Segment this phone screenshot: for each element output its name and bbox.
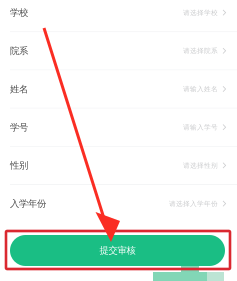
button[interactable]: 姓名 (0, 70, 237, 109)
staticText: 学号 (10, 122, 28, 133)
staticText: 姓名 (10, 83, 28, 95)
staticText: 请输入姓名 (183, 85, 218, 93)
staticText: 学校 (10, 7, 28, 18)
staticText: 请选择院系 (183, 47, 218, 55)
button[interactable]: 学号 (0, 109, 237, 147)
staticText: 请选择学校 (183, 9, 218, 17)
staticText: 提交审核 (99, 245, 135, 256)
button[interactable]: 入学年份 (0, 185, 237, 223)
staticText: 院系 (10, 45, 28, 57)
staticText: 性别 (10, 160, 28, 171)
staticText: 请选择入学年份 (169, 200, 218, 208)
staticText: 请输入学号 (183, 123, 218, 131)
button[interactable]: 学校 (0, 0, 237, 32)
button[interactable]: 院系 (0, 32, 237, 70)
staticText: 入学年份 (10, 198, 46, 209)
button[interactable]: 提交审核 (10, 235, 225, 266)
staticText: 请选择性别 (183, 161, 218, 170)
button[interactable]: 性别 (0, 147, 237, 185)
